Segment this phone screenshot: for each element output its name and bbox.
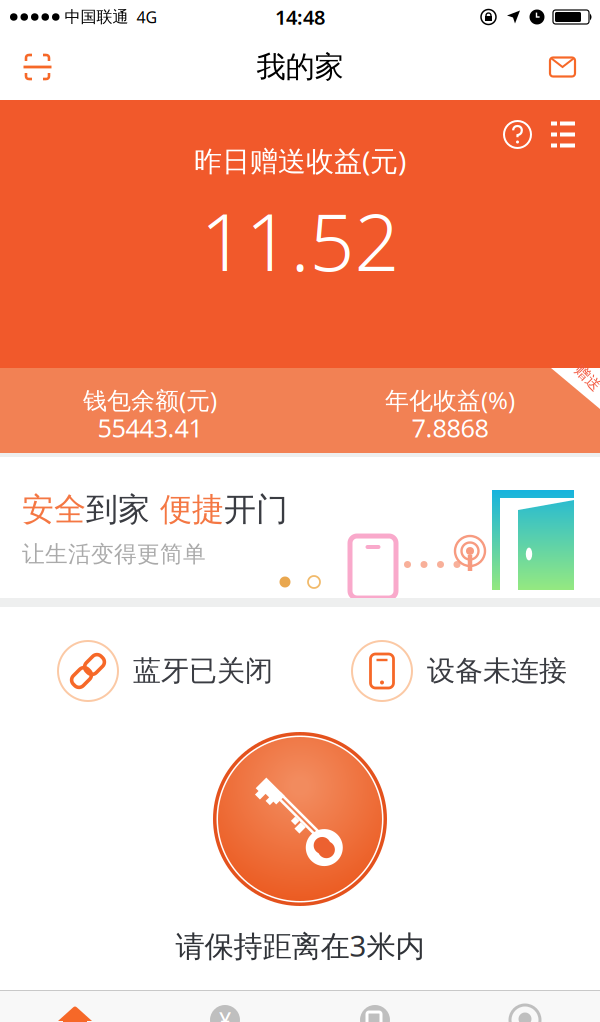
button[interactable]: 设备未连接 <box>352 641 567 701</box>
staticText: 7.8868 <box>411 411 488 444</box>
button[interactable]: 钱包 <box>150 991 300 1022</box>
staticText: 蓝牙已关闭 <box>133 654 273 688</box>
staticText: 4G <box>128 6 157 28</box>
button[interactable]: 蓝牙已关闭 <box>58 641 273 701</box>
staticText: 让生活变得更简单 <box>22 540 206 568</box>
staticText: ¥ <box>219 1006 231 1022</box>
staticText: 14:48 <box>275 4 325 30</box>
button[interactable]: 开门 <box>213 732 387 906</box>
staticText: 中国联通 <box>59 7 128 27</box>
button[interactable]: 收益明细 <box>551 121 575 147</box>
staticText: 到家 <box>86 490 160 529</box>
staticText: 安全 <box>22 490 86 529</box>
staticText: 赠送 <box>573 369 600 387</box>
staticText: 我的家 <box>256 49 343 85</box>
staticText: 11.52 <box>200 188 399 293</box>
staticText: 年化收益(%) <box>385 384 515 416</box>
button[interactable]: 扫一扫 <box>0 55 49 79</box>
staticText: 设备未连接 <box>427 654 567 688</box>
button[interactable]: 我的 <box>450 991 600 1022</box>
button[interactable]: 设备 <box>300 991 450 1022</box>
button[interactable]: 帮助 <box>504 121 531 148</box>
staticText: 开门 <box>224 490 288 529</box>
staticText: 便捷 <box>160 490 224 529</box>
staticText: 钱包余额(元) <box>83 384 217 416</box>
button[interactable]: 首页 <box>0 991 150 1022</box>
staticText: 55443.41 <box>97 411 202 444</box>
button[interactable]: 消息 <box>550 57 600 76</box>
staticText: 昨日赠送收益(元) <box>194 142 406 179</box>
staticText: 请保持距离在3米内 <box>175 926 424 965</box>
